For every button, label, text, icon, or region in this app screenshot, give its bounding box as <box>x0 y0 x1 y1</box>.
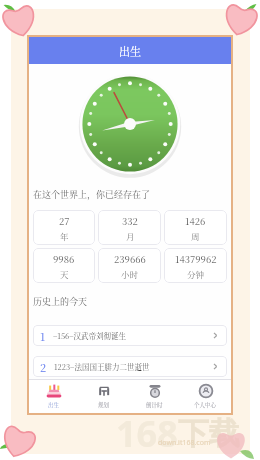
staticText: 27 <box>59 214 70 228</box>
staticText: 168 <box>116 409 178 458</box>
button[interactable]: 倒计时 <box>129 380 180 412</box>
button[interactable]: 1 <box>33 325 227 346</box>
staticText: 239666 <box>114 252 146 266</box>
staticText: 个人中心 <box>194 401 217 409</box>
staticText: −156−汉武帝刘彻诞生 <box>53 330 127 341</box>
button[interactable]: 27 <box>33 210 95 245</box>
staticText: 下载 <box>178 414 240 453</box>
button[interactable]: 14379962 <box>164 248 227 283</box>
staticText: 1 <box>40 328 46 344</box>
staticText: 1426 <box>185 214 206 228</box>
button[interactable]: 个人中心 <box>180 380 231 412</box>
button[interactable]: 出生 <box>29 37 231 64</box>
button[interactable]: 332 <box>98 210 161 245</box>
staticText: 在这个世界上，你已经存在了 <box>33 188 151 201</box>
button[interactable]: 2 <box>33 356 227 377</box>
staticText: 倒计时 <box>146 401 163 409</box>
staticText: 年 <box>60 230 69 242</box>
staticText: 14379962 <box>175 252 217 266</box>
staticText: 出生 <box>119 43 141 59</box>
staticText: 出生 <box>48 401 60 409</box>
button[interactable]: 1426 <box>164 210 227 245</box>
button[interactable]: 9986 <box>33 248 95 283</box>
button[interactable]: 239666 <box>98 248 161 283</box>
staticText: 2 <box>40 359 47 375</box>
staticText: 分钟 <box>187 268 205 280</box>
button[interactable]: 规划 <box>79 380 129 412</box>
staticText: 332 <box>122 214 138 228</box>
staticText: 9986 <box>53 252 75 266</box>
staticText: 周 <box>191 230 200 242</box>
button[interactable]: 出生 <box>29 380 79 412</box>
staticText: 天 <box>60 268 69 280</box>
staticText: 小时 <box>121 268 139 280</box>
staticText: 月 <box>126 230 135 242</box>
staticText: down.it168.com <box>158 438 211 448</box>
staticText: 历史上的今天 <box>33 295 88 308</box>
staticText: 规划 <box>98 401 110 409</box>
staticText: 1223−法国国王腓力二世逝世 <box>54 361 150 372</box>
